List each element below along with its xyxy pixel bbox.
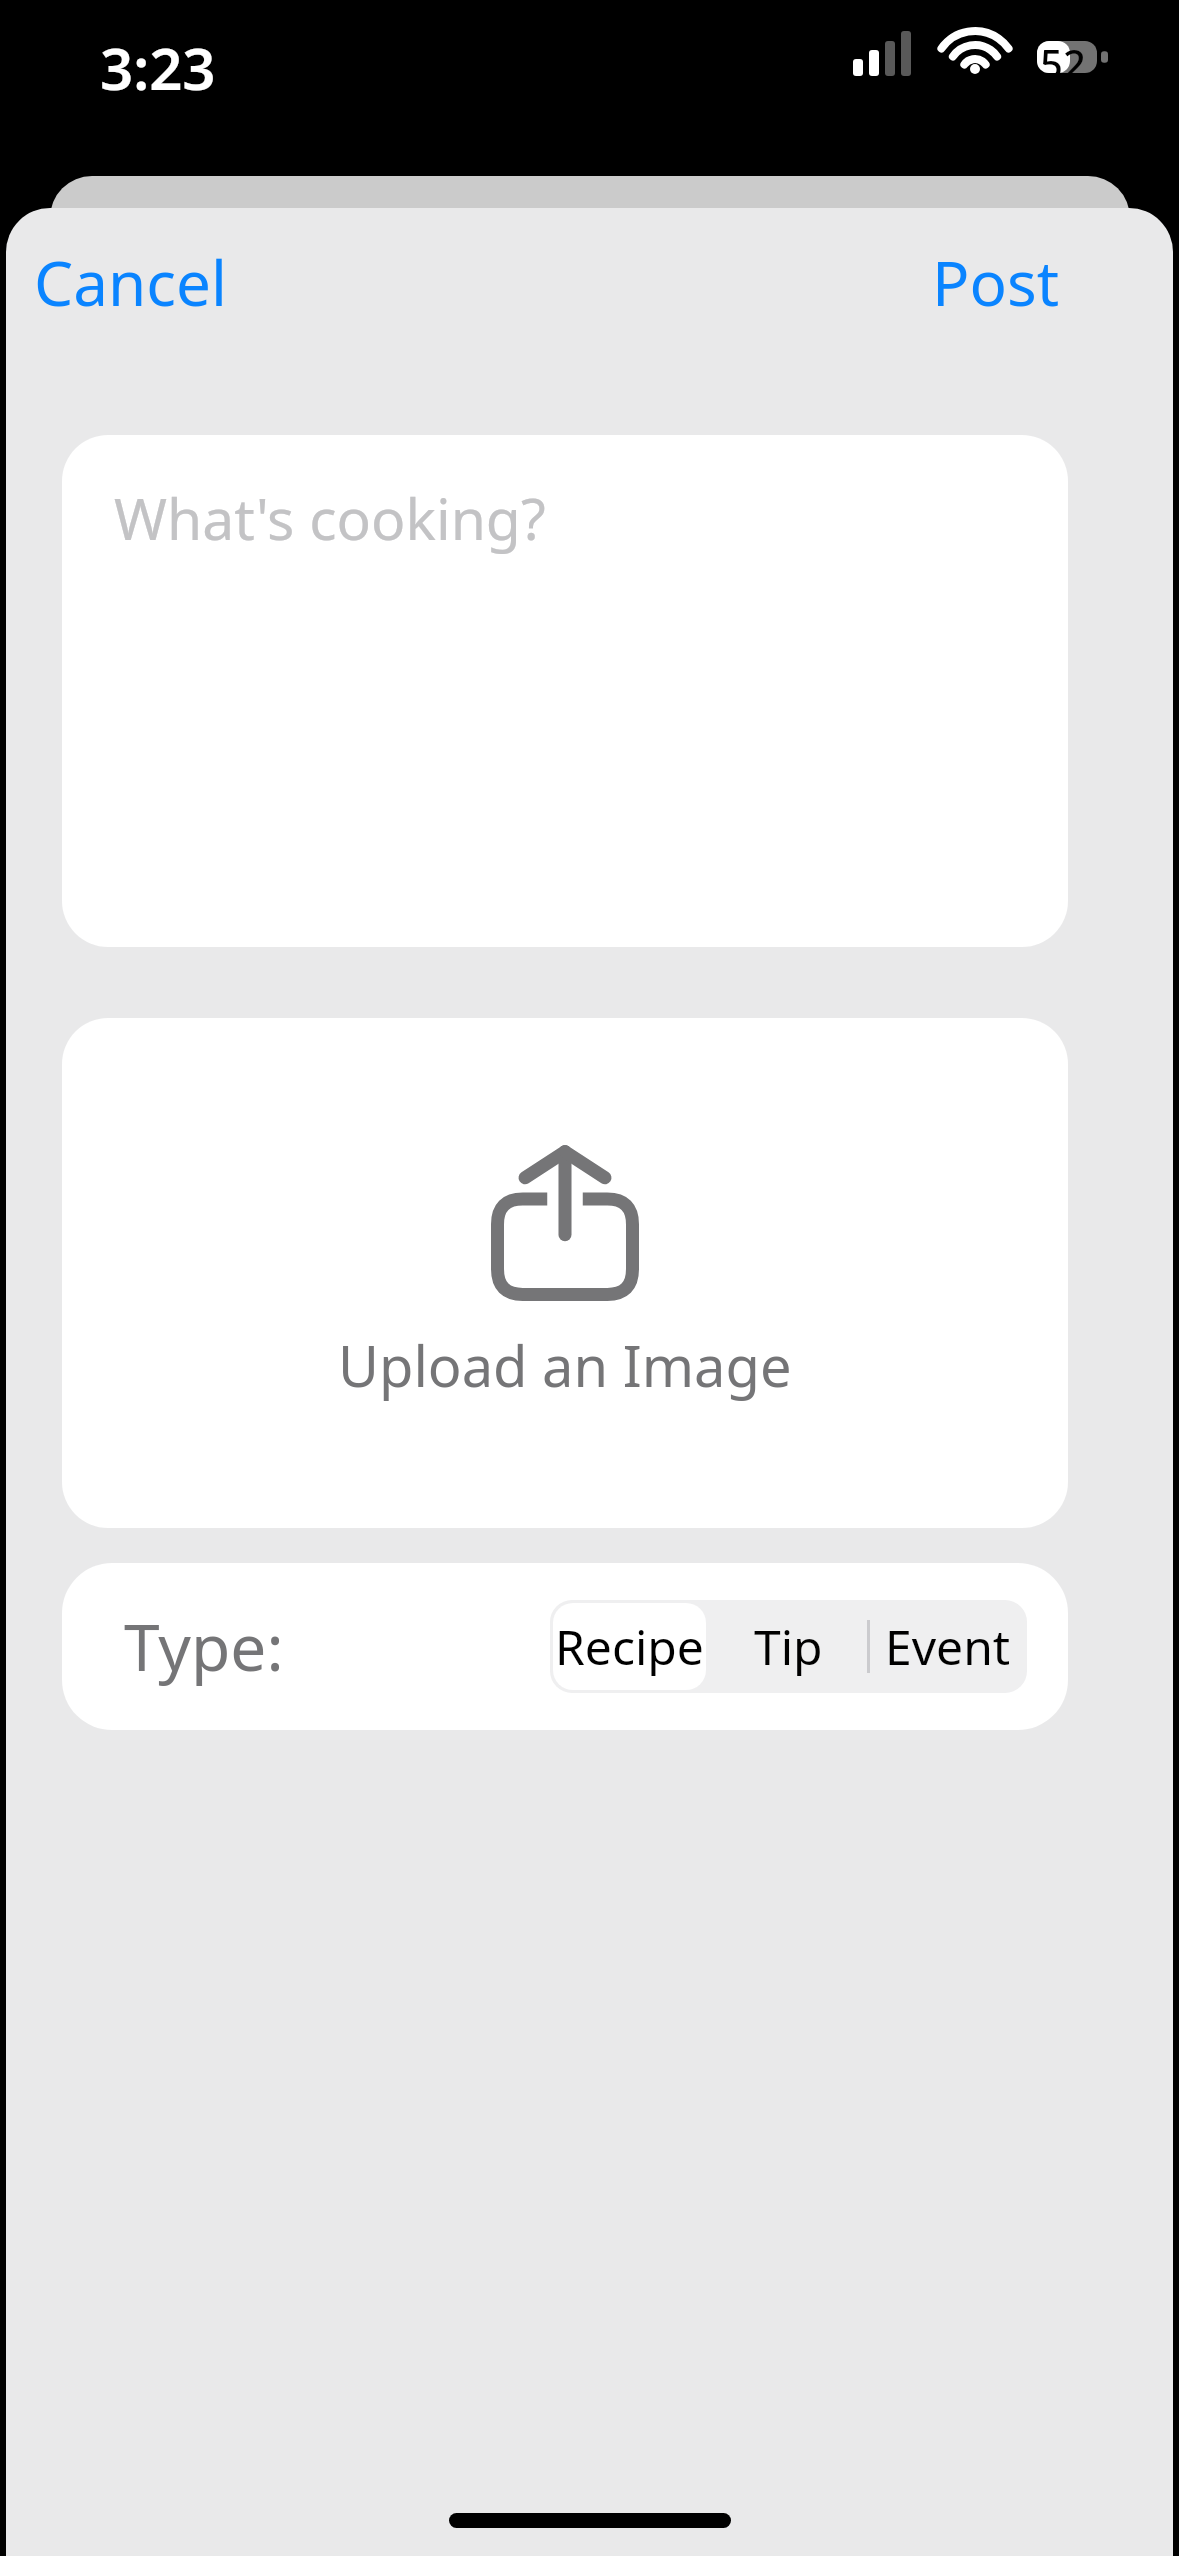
staticText: 52 [1040, 36, 1086, 90]
button[interactable]: Cancel [28, 230, 234, 334]
button[interactable]: Event [868, 1600, 1027, 1693]
staticText: Event [885, 1614, 1011, 1679]
button[interactable]: Upload an Image [62, 1018, 1068, 1528]
staticText: Cancel [34, 240, 228, 324]
button[interactable]: Recipe [550, 1600, 709, 1693]
button[interactable]: Post [926, 230, 1066, 334]
button[interactable]: Tip [709, 1600, 868, 1693]
staticText: Recipe [555, 1614, 704, 1679]
staticText: Tip [754, 1614, 823, 1679]
staticText: Upload an Image [338, 1327, 792, 1403]
button[interactable]: What's cooking? [62, 435, 1068, 947]
staticText: Type: [124, 1603, 284, 1690]
staticText: Post [932, 240, 1060, 324]
staticText: What's cooking? [114, 479, 546, 557]
staticText: 3:23 [100, 28, 216, 107]
